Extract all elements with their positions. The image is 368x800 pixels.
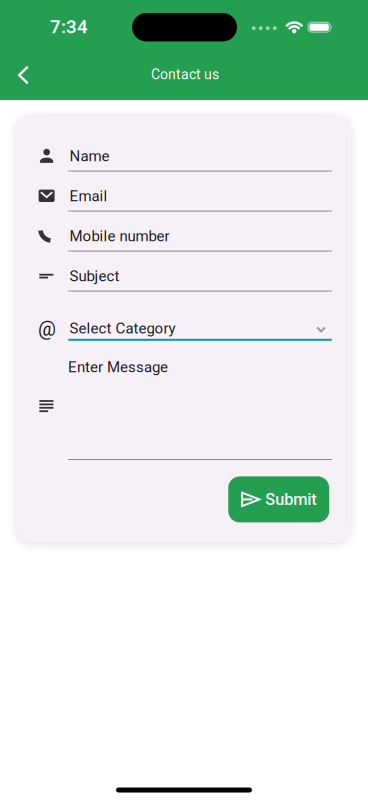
staticText: Email (70, 187, 108, 205)
staticText: 7:34 (50, 16, 88, 38)
staticText: Subject (70, 267, 120, 285)
button[interactable]: Name (16, 136, 351, 176)
button[interactable]: Enter Message (16, 352, 351, 460)
staticText: Name (70, 147, 110, 165)
button[interactable]: Email (16, 176, 351, 216)
staticText: Submit (265, 490, 316, 509)
staticText: Enter Message (68, 358, 168, 376)
button[interactable]: Submit (228, 476, 329, 522)
button[interactable] (1, 53, 45, 97)
button[interactable]: Mobile number (16, 216, 351, 256)
staticText: Mobile number (70, 227, 170, 245)
button[interactable]: @ (16, 308, 351, 352)
staticText: Select Category (70, 320, 176, 337)
staticText: Contact us (151, 66, 219, 83)
staticText: @ (38, 317, 56, 341)
button[interactable]: Subject (16, 256, 351, 296)
